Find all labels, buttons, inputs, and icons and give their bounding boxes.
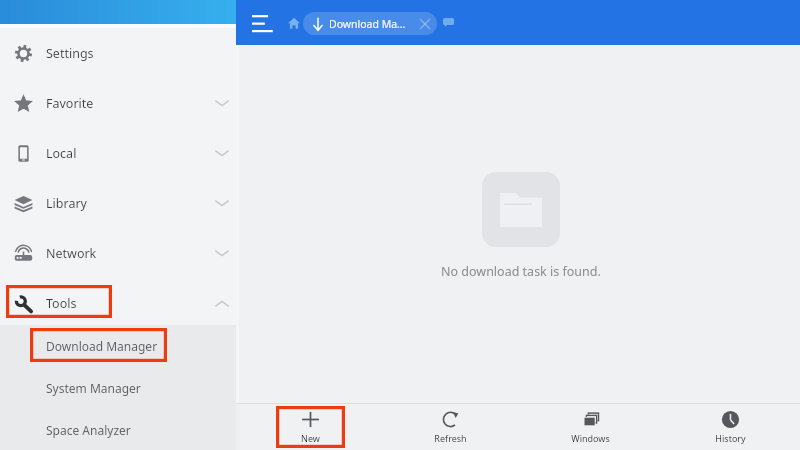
button[interactable]: System Manager <box>0 367 236 409</box>
button[interactable]: Settings <box>0 28 236 78</box>
staticText: Tools <box>46 295 77 312</box>
button[interactable]: Tools <box>0 278 236 325</box>
button[interactable]: Space Analyzer <box>0 409 236 450</box>
button[interactable]: New tab <box>440 14 456 30</box>
button[interactable]: Menu <box>248 8 276 36</box>
button[interactable]: Download Manager <box>0 325 236 367</box>
staticText: Favorite <box>46 95 94 112</box>
staticText: Library <box>46 195 87 212</box>
button[interactable]: Library <box>0 178 236 228</box>
staticText: Download Ma… <box>329 17 406 31</box>
button[interactable]: Home <box>282 11 306 35</box>
button[interactable]: Refresh <box>380 404 520 450</box>
button[interactable]: Windows <box>520 404 660 450</box>
staticText: Space Analyzer <box>46 422 131 438</box>
staticText: Download Manager <box>46 338 158 354</box>
staticText: Refresh <box>434 432 467 444</box>
staticText: No download task is found. <box>441 263 601 280</box>
button[interactable]: Local <box>0 128 236 178</box>
staticText: Network <box>46 245 97 262</box>
staticText: Local <box>46 145 77 162</box>
staticText: History <box>715 432 746 444</box>
staticText: Windows <box>571 432 610 444</box>
button[interactable]: New <box>240 404 380 450</box>
button[interactable]: Network <box>0 228 236 278</box>
button[interactable]: Close tab <box>415 14 435 34</box>
staticText: System Manager <box>46 380 141 396</box>
button[interactable]: Download Ma… <box>303 12 437 35</box>
button[interactable]: History <box>660 404 800 450</box>
staticText: Settings <box>46 45 94 62</box>
staticText: New <box>301 432 320 444</box>
button[interactable]: Favorite <box>0 78 236 128</box>
